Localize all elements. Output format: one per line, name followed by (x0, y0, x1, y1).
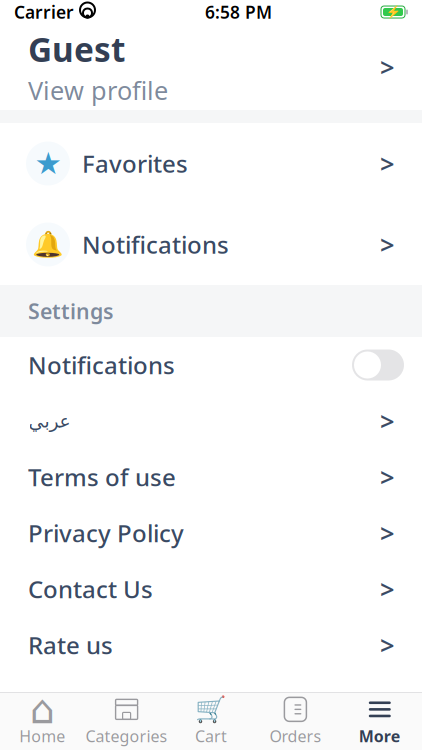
button[interactable]: عربي (0, 393, 422, 449)
button[interactable]: More (338, 693, 422, 749)
staticText: > (380, 460, 394, 494)
staticText: > (380, 628, 394, 662)
button[interactable]: ⌂ (0, 693, 84, 749)
staticText: Cart (195, 725, 227, 747)
staticText: > (380, 147, 394, 180)
staticText: Orders (269, 725, 321, 747)
staticText: More (359, 725, 401, 747)
staticText: View profile (28, 73, 168, 107)
button[interactable]: ★ (0, 123, 422, 204)
button[interactable]: Contact Us (0, 561, 422, 617)
staticText: 6:58 PM (205, 0, 272, 23)
staticText: Notifications (28, 349, 175, 381)
staticText: عربي (28, 410, 70, 432)
staticText: > (380, 228, 394, 261)
staticText: Home (19, 725, 65, 747)
staticText: 🔔 (32, 230, 64, 259)
staticText: > (380, 572, 394, 606)
button[interactable]: 🛒 (169, 693, 253, 749)
button[interactable]: Terms of use (0, 449, 422, 505)
button[interactable]: Guest (0, 24, 422, 110)
staticText: ★ (34, 146, 61, 181)
staticText: Privacy Policy (28, 517, 184, 549)
button[interactable]: Rate us (0, 617, 422, 673)
staticText: Categories (86, 725, 168, 747)
staticText: Terms of use (28, 461, 176, 493)
button[interactable]: 🔔 (0, 204, 422, 285)
staticText: ⌂ (30, 687, 55, 732)
staticText: Contact Us (28, 573, 153, 605)
button[interactable]: Notifications (0, 337, 422, 393)
staticText: ⚡ (385, 5, 400, 19)
staticText: > (380, 404, 394, 438)
button[interactable]: Privacy Policy (0, 505, 422, 561)
staticText: Notifications (82, 229, 229, 260)
staticText: > (380, 50, 394, 84)
staticText: > (380, 516, 394, 550)
button[interactable]: Categories (84, 693, 169, 749)
staticText: Guest (28, 27, 125, 71)
staticText: 🛒 (195, 695, 227, 724)
staticText: Settings (28, 297, 114, 325)
button[interactable]: Orders (253, 693, 338, 749)
staticText: Carrier (14, 0, 74, 23)
staticText: Favorites (82, 148, 188, 179)
staticText: Rate us (28, 629, 113, 661)
